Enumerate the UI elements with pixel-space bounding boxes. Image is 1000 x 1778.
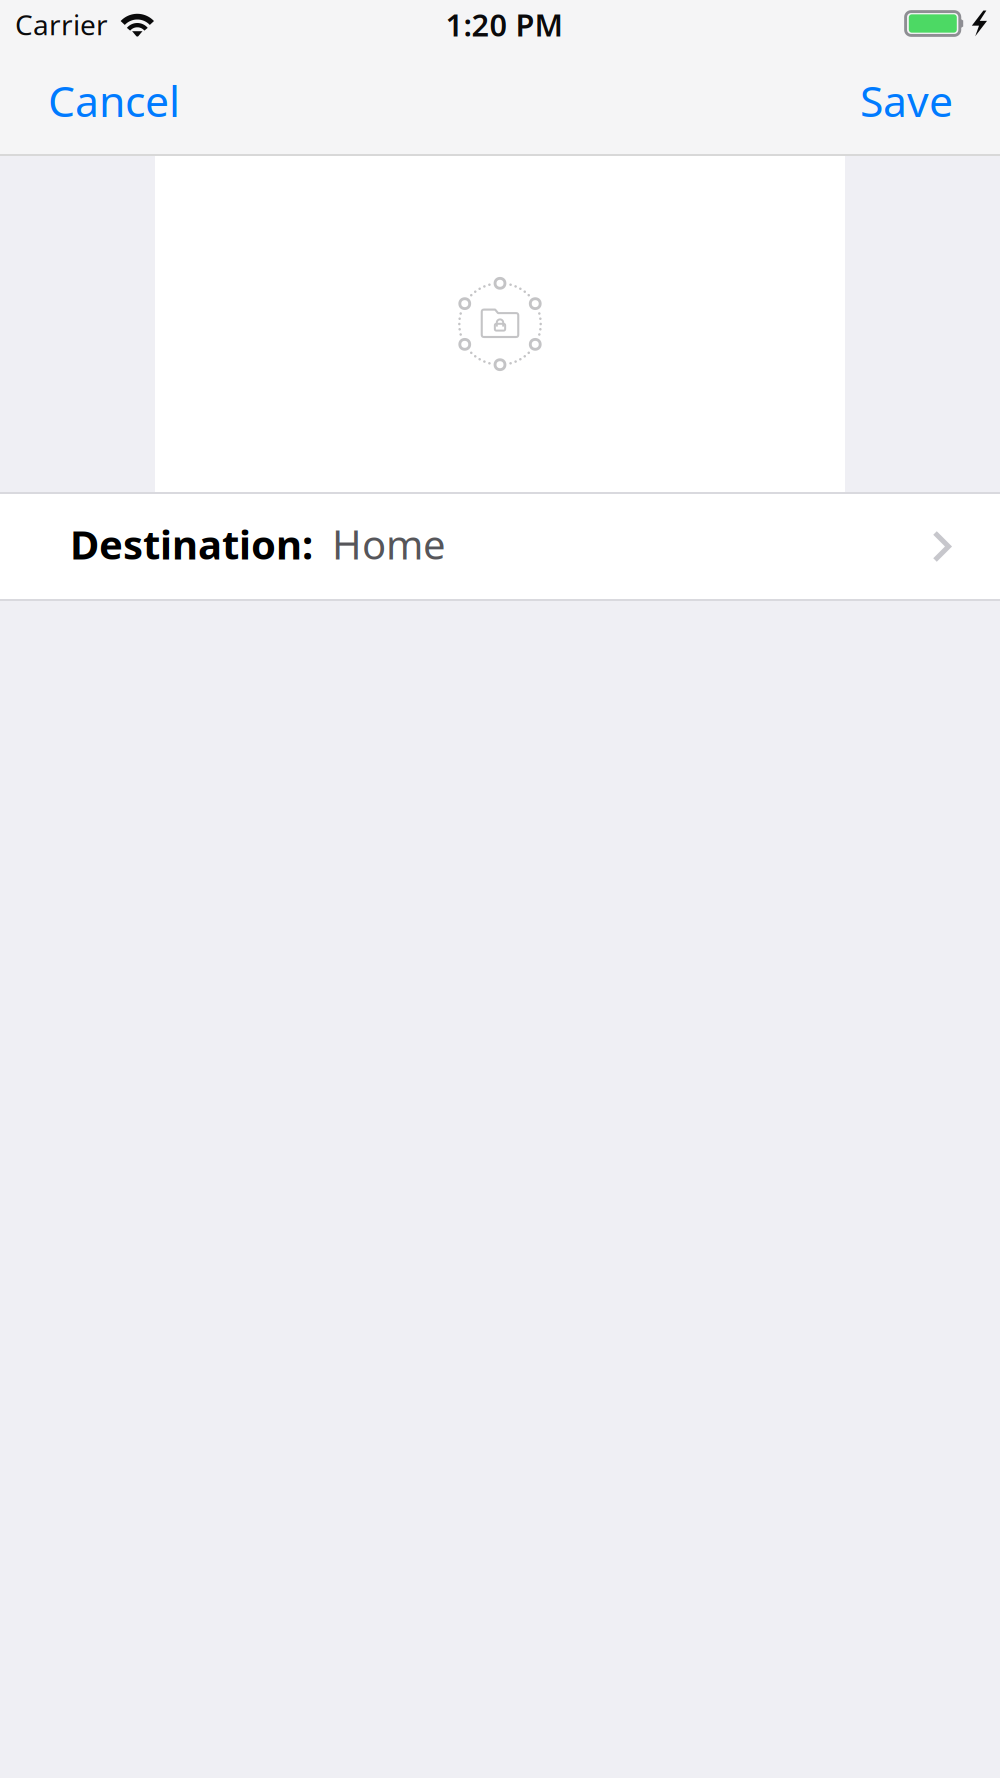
staticText: Destination: (70, 517, 313, 570)
staticText: Cancel (48, 72, 180, 129)
button[interactable]: Destination: (0, 494, 1000, 599)
button[interactable]: Save (836, 55, 1000, 154)
button[interactable]: Cancel (0, 55, 204, 154)
staticText: Save (860, 72, 953, 129)
staticText: 1:20 PM (445, 4, 562, 45)
staticText: Home (332, 517, 446, 570)
staticText: Carrier (15, 6, 108, 43)
